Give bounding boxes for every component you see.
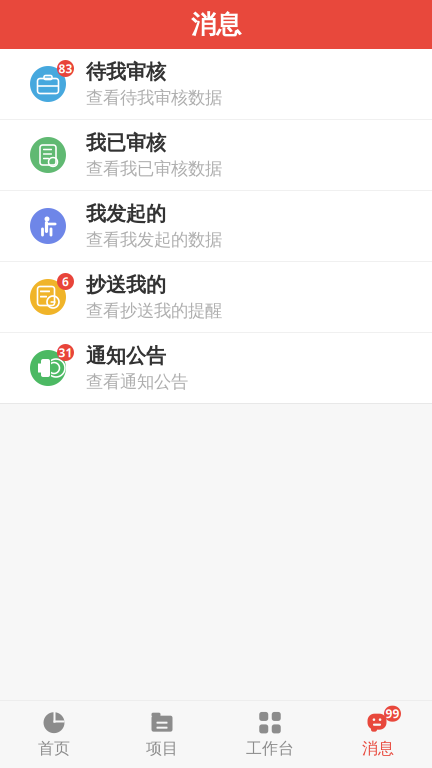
- staticText: 99: [385, 706, 399, 722]
- staticText: 查看待我审核数据: [86, 87, 222, 108]
- button[interactable]: 我发起的: [0, 191, 432, 261]
- button[interactable]: 83: [0, 49, 432, 119]
- staticText: 消息: [362, 739, 394, 758]
- button[interactable]: 工作台: [216, 703, 324, 765]
- staticText: 工作台: [246, 739, 294, 758]
- button[interactable]: 31: [0, 333, 432, 403]
- staticText: 查看抄送我的提醒: [86, 300, 222, 321]
- staticText: 我已审核: [86, 131, 166, 155]
- staticText: 通知公告: [86, 344, 166, 368]
- staticText: 消息: [191, 9, 241, 40]
- staticText: 抄送我的: [86, 273, 166, 297]
- button[interactable]: 项目: [108, 703, 216, 765]
- button[interactable]: 我已审核: [0, 120, 432, 190]
- staticText: 项目: [146, 739, 178, 758]
- staticText: 我发起的: [86, 202, 166, 226]
- staticText: 83: [58, 60, 72, 76]
- staticText: 查看我发起的数据: [86, 229, 222, 250]
- staticText: 6: [62, 273, 69, 289]
- staticText: 待我审核: [86, 60, 166, 84]
- button[interactable]: 6: [0, 262, 432, 332]
- button[interactable]: 99: [324, 703, 432, 765]
- button[interactable]: 首页: [0, 703, 108, 765]
- staticText: 首页: [38, 739, 70, 758]
- staticText: 查看通知公告: [86, 371, 188, 392]
- staticText: 查看我已审核数据: [86, 158, 222, 179]
- staticText: 31: [58, 344, 72, 360]
